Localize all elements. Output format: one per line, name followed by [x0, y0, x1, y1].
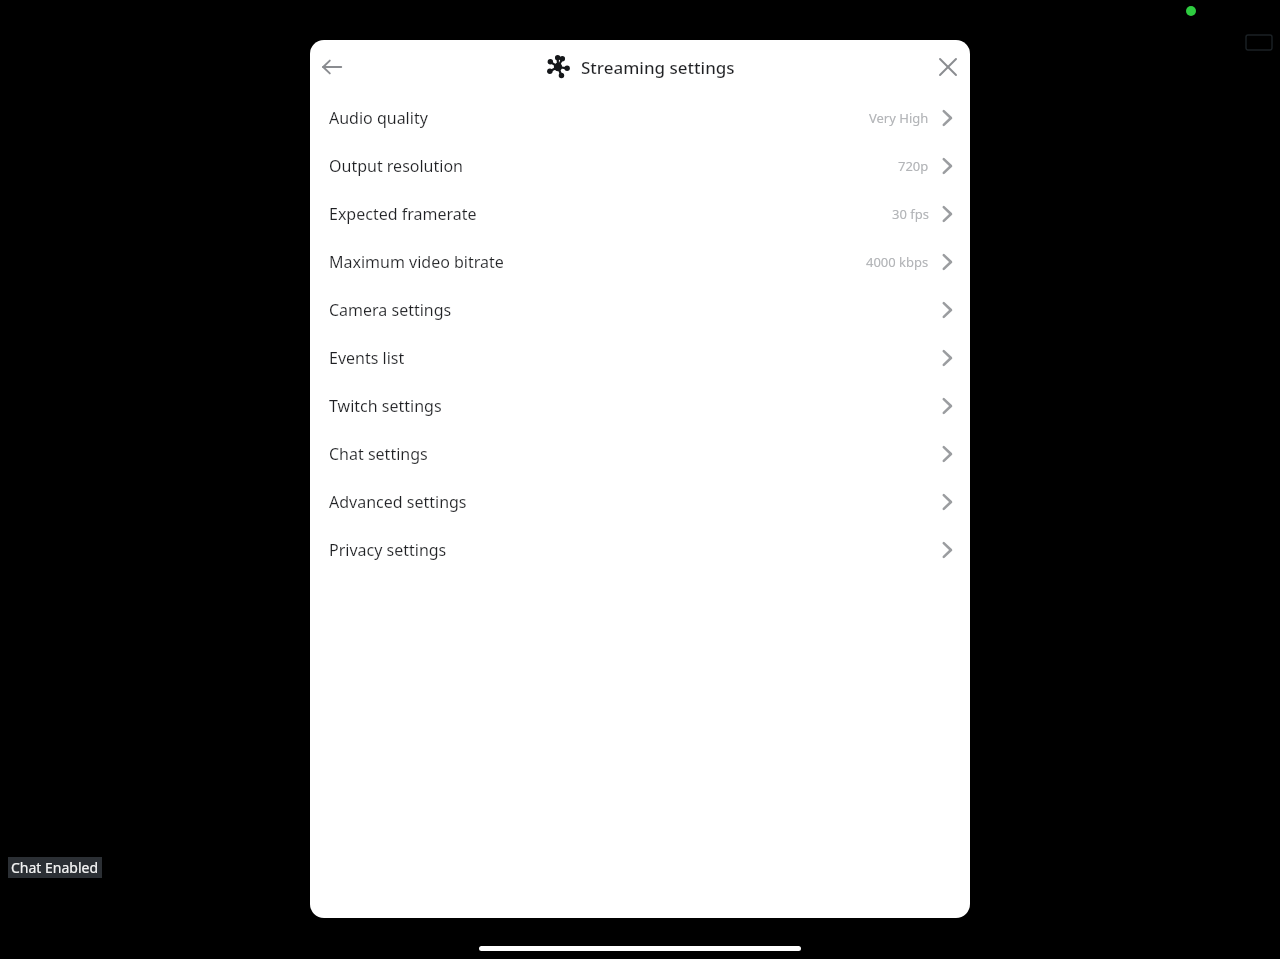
- staticText: Chat Enabled: [11, 858, 99, 877]
- staticText: Privacy settings: [329, 539, 447, 561]
- button[interactable]: Camera settings: [310, 286, 970, 334]
- button[interactable]: Output resolution: [310, 142, 970, 190]
- staticText: Output resolution: [329, 155, 463, 177]
- staticText: Maximum video bitrate: [329, 251, 504, 273]
- button[interactable]: Back: [311, 46, 353, 88]
- staticText: Events list: [329, 347, 405, 369]
- staticText: 30 fps: [892, 205, 929, 223]
- button[interactable]: Expected framerate: [310, 190, 970, 238]
- button[interactable]: Advanced settings: [310, 478, 970, 526]
- button[interactable]: Maximum video bitrate: [310, 238, 970, 286]
- button[interactable]: Audio quality: [310, 94, 970, 142]
- button[interactable]: Close: [927, 46, 969, 88]
- button[interactable]: Privacy settings: [310, 526, 970, 574]
- staticText: Camera settings: [329, 299, 452, 321]
- button[interactable]: Twitch settings: [310, 382, 970, 430]
- staticText: Twitch settings: [329, 395, 442, 417]
- staticText: Expected framerate: [329, 203, 477, 225]
- staticText: Chat settings: [329, 443, 428, 465]
- staticText: Very High: [869, 109, 929, 127]
- button[interactable]: Events list: [310, 334, 970, 382]
- staticText: Audio quality: [329, 107, 428, 129]
- staticText: Streaming settings: [581, 56, 735, 79]
- staticText: 4000 kbps: [866, 253, 929, 271]
- staticText: Advanced settings: [329, 491, 467, 513]
- button[interactable]: Chat settings: [310, 430, 970, 478]
- staticText: 720p: [898, 157, 929, 175]
